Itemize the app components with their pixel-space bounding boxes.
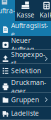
staticText: Kasse [16, 11, 34, 19]
button[interactable]: Kasse [15, 0, 36, 21]
button[interactable]: Druckmanager [0, 78, 51, 93]
staticText: Neuer Auftrag [11, 36, 34, 54]
staticText: Ladeliste [11, 109, 39, 118]
button[interactable]: Auftragsliste [0, 21, 51, 36]
staticText: Auftrag [0, 6, 15, 24]
staticText: Shopexport [11, 50, 45, 68]
staticText: Gruppen [11, 95, 39, 104]
button[interactable]: Ladeliste [0, 107, 51, 120]
button[interactable]: Gruppen [0, 93, 51, 107]
button[interactable]: Auftrag [0, 0, 15, 21]
staticText: Druckmanager [11, 78, 46, 96]
button[interactable]: Neuer Auftrag [0, 36, 51, 50]
staticText: Auftragsliste [11, 21, 48, 39]
button[interactable]: Kalk [36, 0, 51, 21]
button[interactable]: Shopexport [0, 50, 51, 64]
staticText: Kalk [39, 11, 51, 19]
staticText: Selektion [11, 66, 41, 75]
button[interactable]: Selektion [0, 64, 51, 78]
